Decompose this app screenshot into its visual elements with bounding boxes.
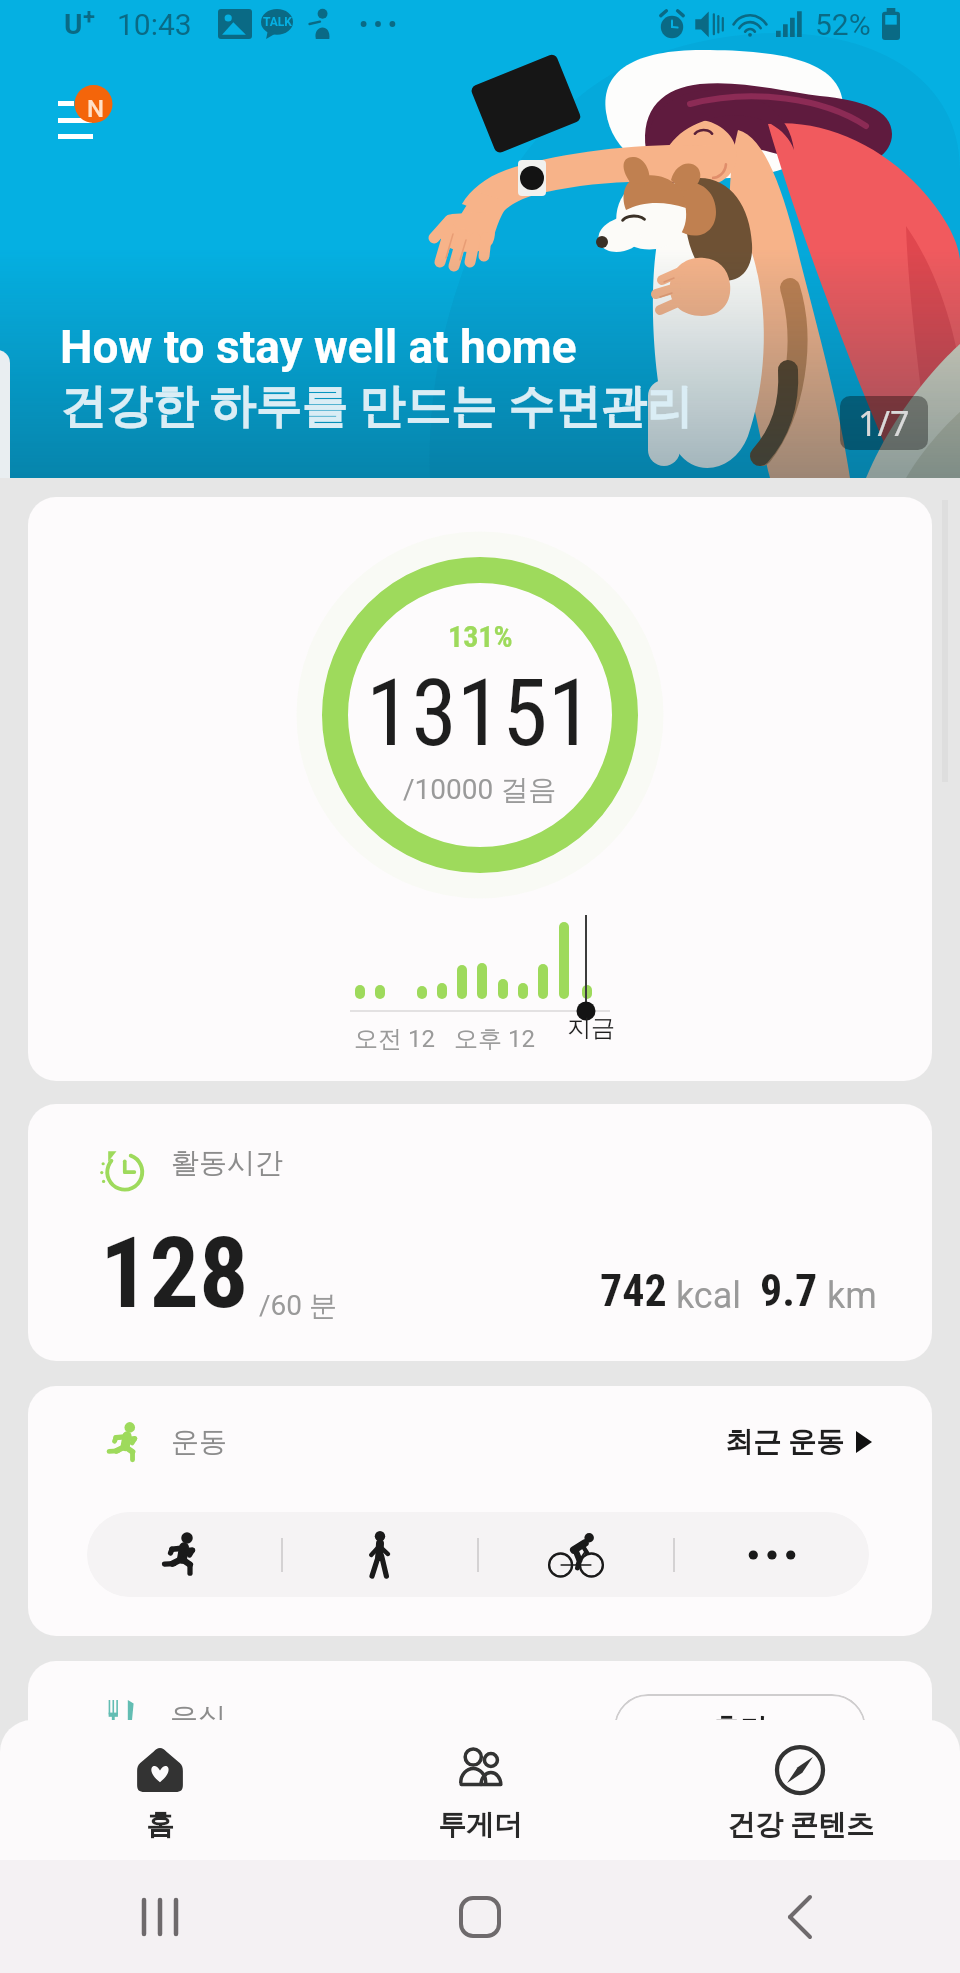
staticText: 128 — [100, 1216, 249, 1331]
button[interactable]: Back — [640, 1860, 960, 1973]
staticText: 1/7 — [858, 400, 910, 446]
staticText: 지금 — [567, 1013, 615, 1043]
staticText: TALK — [263, 15, 292, 29]
staticText: 건강 콘텐츠 — [727, 1807, 874, 1842]
button[interactable]: 활동시간 — [28, 1104, 932, 1361]
button[interactable]: 투게더 — [320, 1720, 640, 1860]
staticText: 건강한 하루를 만드는 수면관리 — [60, 378, 693, 436]
staticText: 13151 — [366, 660, 594, 768]
staticText: 52% — [815, 7, 871, 42]
staticText: 131% — [448, 619, 513, 654]
button[interactable]: More exercises — [675, 1512, 869, 1597]
staticText: 운동 — [171, 1424, 227, 1459]
button[interactable]: 건강 콘텐츠 — [640, 1720, 960, 1860]
button[interactable]: Home — [320, 1860, 640, 1973]
button[interactable]: 최근 운동 — [725, 1424, 872, 1459]
staticText: 9.7 — [760, 1265, 818, 1317]
staticText: + — [83, 4, 95, 30]
staticText: 음식 — [170, 1700, 226, 1735]
staticText: /60 분 — [259, 1288, 337, 1323]
staticText: km — [818, 1275, 877, 1317]
staticText: /10000 걸음 — [403, 772, 557, 807]
staticText: 홈 — [146, 1807, 174, 1842]
button[interactable]: Running — [87, 1512, 281, 1597]
button[interactable]: Walking — [283, 1512, 477, 1597]
staticText: 오전 12 — [354, 1024, 435, 1054]
staticText: 10:43 — [117, 7, 192, 42]
button[interactable]: 131% — [28, 497, 932, 1081]
button[interactable]: 홈 — [0, 1720, 320, 1860]
button[interactable]: Recents — [0, 1860, 320, 1973]
button[interactable]: Cycling — [479, 1512, 673, 1597]
button[interactable]: 추가 — [614, 1694, 866, 1762]
staticText: 투게더 — [438, 1807, 522, 1842]
staticText: 추가 — [712, 1711, 768, 1746]
staticText: kcal — [667, 1275, 742, 1317]
staticText: 742 — [600, 1265, 667, 1317]
staticText: N — [87, 95, 105, 123]
staticText: 활동시간 — [171, 1145, 283, 1180]
staticText: U — [64, 8, 83, 41]
staticText: 오후 12 — [454, 1024, 535, 1054]
button[interactable]: Menu — [52, 78, 120, 146]
button[interactable]: 운동 — [28, 1386, 932, 1636]
button[interactable]: 음식 — [28, 1661, 932, 1941]
staticText: 최근 운동 — [725, 1424, 844, 1459]
staticText: How to stay well at home — [60, 320, 577, 374]
